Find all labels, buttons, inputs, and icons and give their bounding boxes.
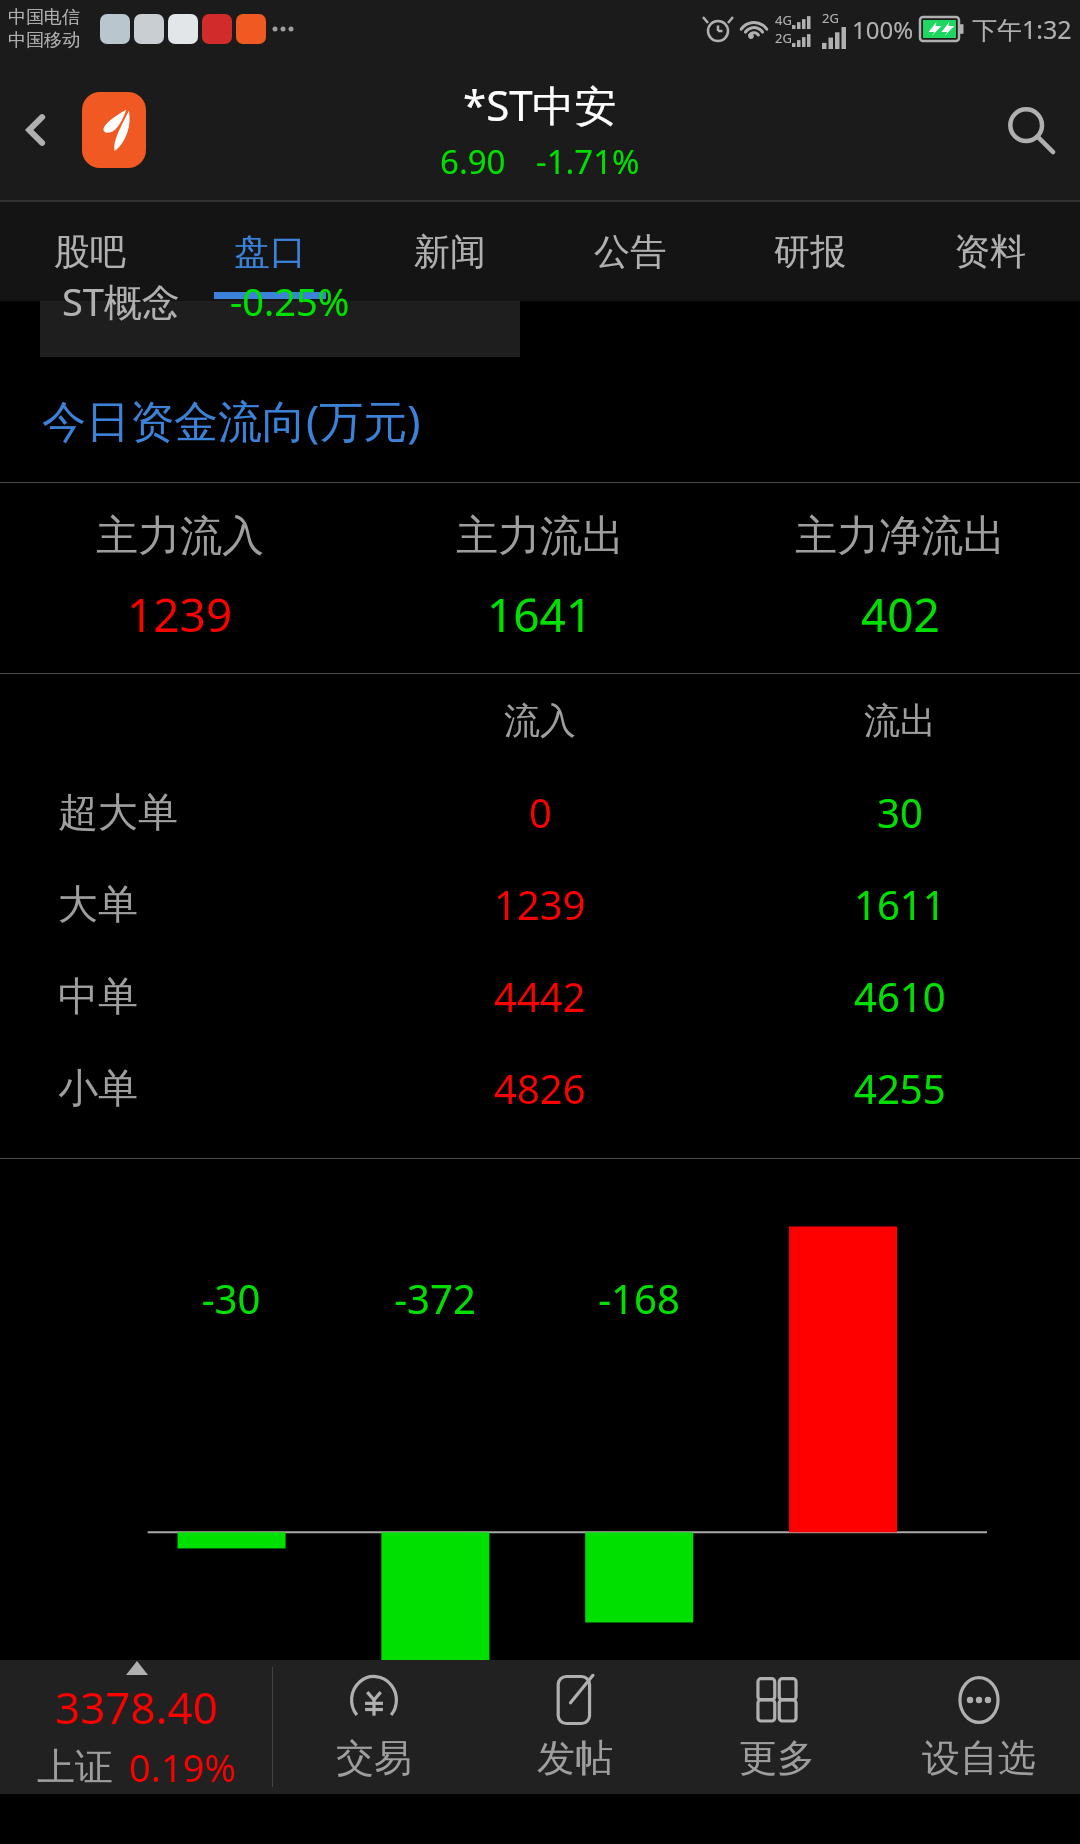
- button[interactable]: 交易: [273, 1660, 474, 1794]
- staticText: 4442: [494, 969, 586, 1023]
- button[interactable]: 更多: [676, 1660, 878, 1794]
- button[interactable]: 设自选: [878, 1660, 1080, 1794]
- staticText: 中单: [58, 971, 138, 1021]
- staticText: -372: [333, 1271, 537, 1325]
- staticText: 1611: [854, 877, 946, 931]
- staticText: 流入: [504, 698, 576, 743]
- staticText: 6.90: [440, 139, 506, 184]
- staticText: 1239: [127, 583, 233, 646]
- staticText: 更多: [739, 1734, 815, 1782]
- staticText: 4255: [854, 1061, 946, 1115]
- staticText: 研报: [774, 229, 846, 274]
- staticText: *ST中安: [463, 76, 617, 133]
- staticText: 100%: [852, 13, 914, 46]
- staticText: 3378.40: [55, 1677, 218, 1737]
- staticText: 2G: [822, 9, 839, 27]
- staticText: 4826: [494, 1061, 586, 1115]
- button[interactable]: 股吧: [0, 201, 180, 301]
- button[interactable]: Back: [0, 94, 72, 166]
- staticText: 中国移动: [8, 29, 80, 52]
- button[interactable]: 研报: [720, 201, 900, 301]
- staticText: 资料: [954, 229, 1026, 274]
- button[interactable]: 资料: [900, 201, 1080, 301]
- staticText: 0.19%: [129, 1741, 236, 1793]
- staticText: 下午1:32: [972, 12, 1072, 46]
- staticText: 1641: [487, 583, 593, 646]
- button[interactable]: 公告: [540, 201, 720, 301]
- staticText: 主力流出: [456, 510, 624, 563]
- staticText: -0.25%: [230, 275, 350, 327]
- staticText: 中国电信: [8, 6, 80, 29]
- button[interactable]: 新闻: [360, 201, 540, 301]
- staticText: 上证: [37, 1743, 113, 1791]
- staticText: 30: [877, 785, 923, 839]
- button[interactable]: App logo: [82, 92, 146, 168]
- staticText: -1.71%: [536, 139, 640, 184]
- staticText: 发帖: [537, 1734, 613, 1782]
- staticText: 4G: [775, 11, 792, 29]
- staticText: -168: [537, 1271, 741, 1325]
- staticText: 402: [861, 583, 940, 646]
- staticText: 小单: [58, 1063, 138, 1113]
- staticText: 今日资金流向(万元): [42, 390, 421, 450]
- staticText: 股吧: [54, 229, 126, 274]
- button[interactable]: 盘口: [180, 201, 360, 301]
- staticText: 4610: [854, 969, 946, 1023]
- staticText: 主力流入: [96, 510, 264, 563]
- staticText: 公告: [594, 229, 666, 274]
- button[interactable]: 3378.40: [0, 1660, 272, 1794]
- staticText: 流出: [864, 698, 936, 743]
- staticText: 设自选: [922, 1734, 1036, 1782]
- staticText: ST概念: [62, 275, 180, 327]
- button[interactable]: Search: [980, 80, 1080, 180]
- button[interactable]: ST概念: [40, 301, 520, 357]
- staticText: 1239: [494, 877, 586, 931]
- staticText: 超大单: [58, 787, 178, 837]
- staticText: 新闻: [414, 229, 486, 274]
- button[interactable]: 发帖: [474, 1660, 676, 1794]
- staticText: -30: [129, 1271, 333, 1325]
- staticText: 0: [529, 785, 552, 839]
- staticText: 2G: [775, 29, 792, 47]
- staticText: 570: [741, 1331, 945, 1385]
- staticText: 大单: [58, 879, 138, 929]
- staticText: 盘口: [234, 229, 306, 274]
- staticText: 交易: [336, 1734, 412, 1782]
- staticText: 主力净流出: [795, 510, 1005, 563]
